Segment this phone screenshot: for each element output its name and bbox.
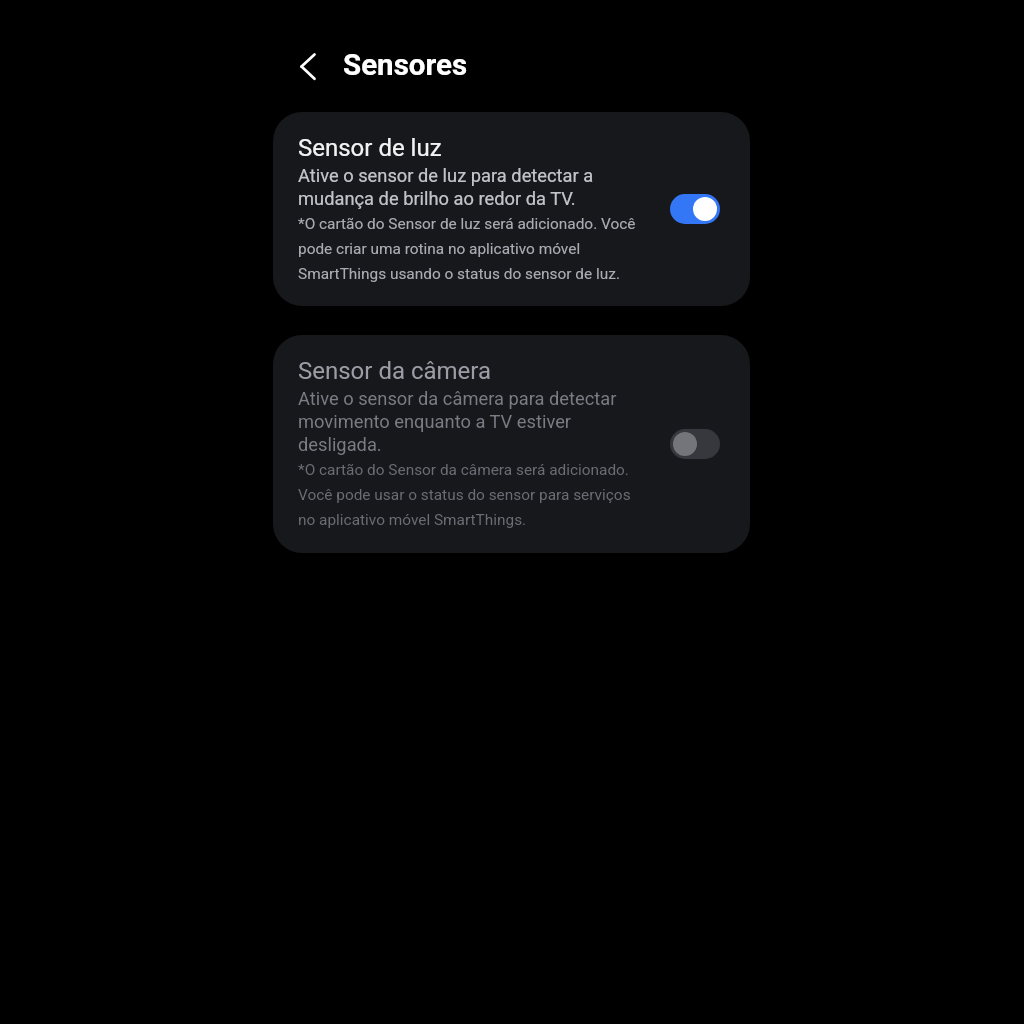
button[interactable]: Sensor da câmera: [273, 335, 750, 553]
button[interactable]: Voltar: [286, 43, 332, 89]
staticText: Sensor da câmera: [298, 357, 492, 385]
staticText: Ative o sensor de luz para detectar a mu…: [298, 163, 594, 209]
staticText: Sensor de luz: [298, 134, 442, 162]
staticText: Sensores: [343, 48, 468, 82]
staticText: *O cartão do Sensor da câmera será adici…: [298, 456, 631, 531]
button[interactable]: Sensor de luz: [273, 112, 750, 306]
button[interactable]: Sensor da câmera desligado: [670, 429, 720, 459]
staticText: *O cartão do Sensor de luz será adiciona…: [298, 210, 636, 285]
button[interactable]: Sensor de luz ligado: [670, 194, 720, 224]
staticText: Ative o sensor da câmera para detectar m…: [298, 386, 617, 455]
